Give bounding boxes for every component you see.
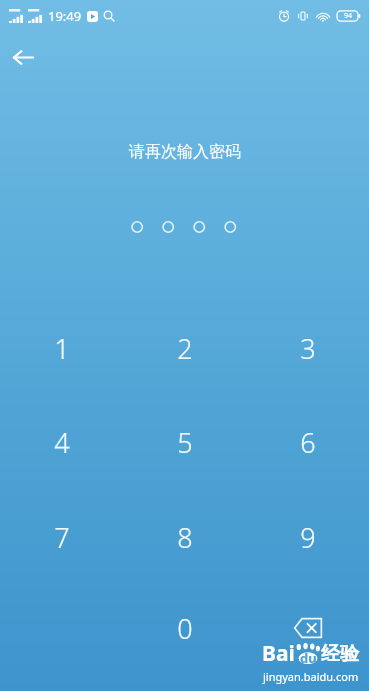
staticText: 94 bbox=[344, 11, 353, 21]
staticText: 9 bbox=[300, 519, 316, 556]
staticText: 0 bbox=[177, 610, 193, 647]
button[interactable]: 5 bbox=[123, 417, 246, 467]
staticText: 1 bbox=[54, 330, 70, 367]
button[interactable]: 0 bbox=[123, 603, 246, 653]
button[interactable]: 3 bbox=[246, 323, 369, 373]
staticText: Bai bbox=[262, 639, 295, 668]
staticText: 请再次输入密码 bbox=[129, 142, 241, 162]
button[interactable]: 7 bbox=[0, 512, 123, 562]
button[interactable]: 8 bbox=[123, 512, 246, 562]
staticText: 19:49 bbox=[48, 7, 82, 25]
staticText: 5 bbox=[177, 424, 193, 461]
staticText: 4 bbox=[54, 424, 70, 461]
button[interactable]: 9 bbox=[246, 512, 369, 562]
staticText: 6 bbox=[300, 424, 316, 461]
staticText: 8 bbox=[177, 519, 193, 556]
staticText: 2 bbox=[177, 330, 193, 367]
staticText: 经验 bbox=[321, 642, 359, 666]
staticText: jingyan.baidu.com bbox=[263, 669, 359, 684]
staticText: 3 bbox=[300, 330, 316, 367]
button[interactable]: 1 bbox=[0, 323, 123, 373]
staticText: 7 bbox=[54, 519, 70, 556]
button[interactable]: 4 bbox=[0, 417, 123, 467]
button[interactable]: 6 bbox=[246, 417, 369, 467]
button[interactable]: 2 bbox=[123, 323, 246, 373]
staticText: du bbox=[300, 649, 317, 667]
button[interactable]: Delete bbox=[246, 603, 369, 653]
button[interactable]: Back bbox=[5, 39, 41, 75]
